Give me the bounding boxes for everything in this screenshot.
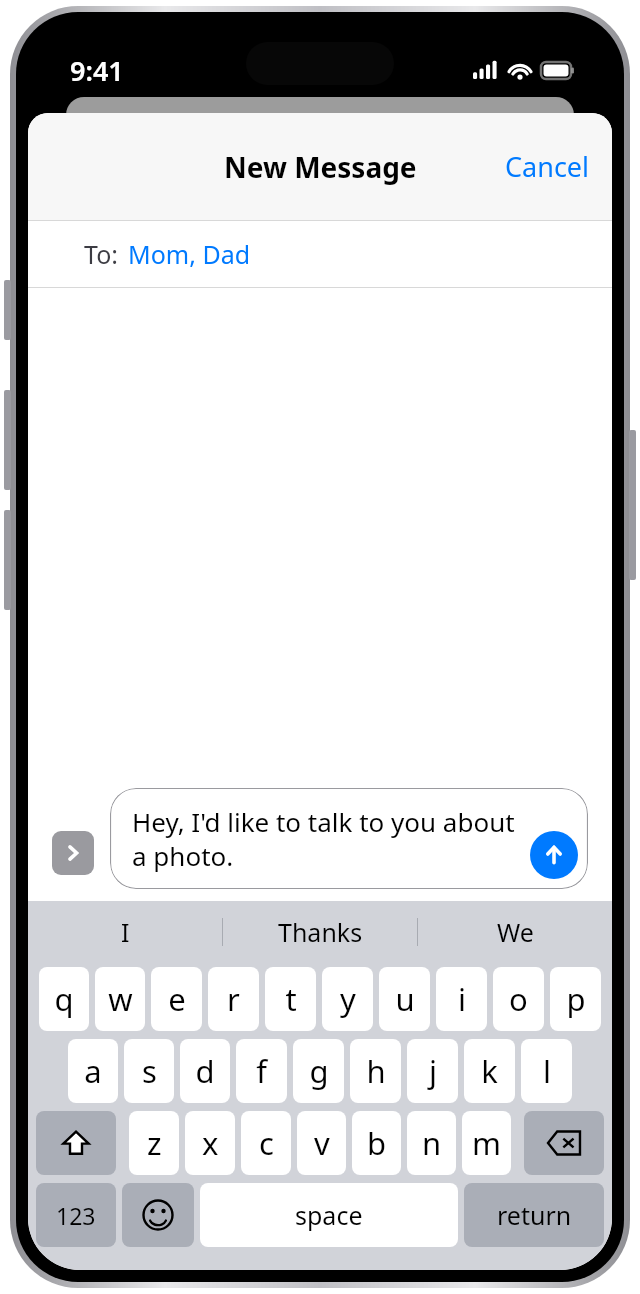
staticText: i [458, 978, 466, 1020]
button[interactable]: j [407, 1039, 458, 1103]
staticText: y [340, 978, 356, 1020]
button[interactable]: m [462, 1111, 511, 1175]
button[interactable]: Shift [36, 1111, 116, 1175]
button[interactable]: r [208, 967, 259, 1031]
button[interactable]: g [293, 1039, 344, 1103]
button[interactable]: o [493, 967, 544, 1031]
staticText: v [314, 1122, 330, 1164]
staticText: New Message [224, 148, 417, 186]
button[interactable]: Hey, I'd like to talk to you about a pho… [110, 788, 588, 889]
button[interactable]: b [352, 1111, 401, 1175]
button[interactable]: I [28, 901, 222, 963]
staticText: Cancel [505, 148, 590, 185]
staticText: I [121, 915, 130, 949]
button[interactable]: 123 [36, 1183, 116, 1247]
button[interactable]: return [464, 1183, 604, 1247]
staticText: f [256, 1050, 267, 1092]
button[interactable]: Send [530, 831, 578, 879]
staticText: Mom, Dad [128, 237, 251, 271]
staticText: n [422, 1122, 442, 1164]
staticText: To: [84, 237, 118, 271]
button[interactable]: h [350, 1039, 401, 1103]
staticText: b [367, 1122, 387, 1164]
staticText: m [472, 1122, 501, 1164]
staticText: We [497, 915, 534, 949]
button[interactable]: e [151, 967, 202, 1031]
button[interactable]: i [436, 967, 487, 1031]
staticText: k [481, 1050, 498, 1092]
staticText: 9:41 [70, 52, 124, 89]
button[interactable]: s [124, 1039, 174, 1103]
button[interactable]: Dictate [522, 1264, 574, 1270]
staticText: Thanks [278, 915, 363, 949]
staticText: w [108, 978, 133, 1020]
staticText: q [54, 978, 74, 1020]
staticText: s [142, 1050, 157, 1092]
staticText: x [202, 1122, 219, 1164]
staticText: e [168, 978, 186, 1020]
button[interactable]: l [521, 1039, 572, 1103]
staticText: t [285, 978, 297, 1020]
button[interactable]: d [180, 1039, 230, 1103]
staticText: d [195, 1050, 215, 1092]
staticText: space [295, 1198, 363, 1232]
button[interactable]: a [68, 1039, 118, 1103]
button[interactable]: space [200, 1183, 458, 1247]
button[interactable]: t [265, 967, 316, 1031]
button[interactable]: Expand apps [52, 831, 94, 875]
button[interactable]: w [95, 967, 145, 1031]
staticText: l [543, 1050, 551, 1092]
staticText: 123 [56, 1200, 96, 1231]
button[interactable]: Backspace [524, 1111, 604, 1175]
staticText: g [309, 1050, 329, 1092]
button[interactable]: n [407, 1111, 456, 1175]
button[interactable]: p [550, 967, 601, 1031]
button[interactable]: k [464, 1039, 515, 1103]
button[interactable]: x [185, 1111, 235, 1175]
button[interactable]: To: [28, 221, 612, 287]
button[interactable]: v [297, 1111, 346, 1175]
button[interactable]: We [418, 901, 612, 963]
staticText: c [259, 1122, 274, 1164]
button[interactable]: u [379, 967, 430, 1031]
staticText: z [147, 1122, 162, 1164]
staticText: r [227, 978, 240, 1020]
button[interactable]: Thanks [223, 901, 417, 963]
staticText: o [509, 978, 528, 1020]
button[interactable]: y [322, 967, 373, 1031]
staticText: return [497, 1198, 572, 1232]
button[interactable]: Cancel [483, 136, 612, 197]
button[interactable]: Change keyboard [62, 1264, 114, 1270]
staticText: Hey, I'd like to talk to you about a pho… [132, 804, 524, 873]
staticText: a [84, 1050, 102, 1092]
button[interactable]: z [129, 1111, 179, 1175]
button[interactable]: f [236, 1039, 287, 1103]
staticText: p [566, 978, 586, 1020]
button[interactable]: q [39, 967, 89, 1031]
staticText: j [429, 1050, 437, 1092]
button[interactable]: c [241, 1111, 291, 1175]
staticText: u [395, 978, 415, 1020]
staticText: h [366, 1050, 386, 1092]
button[interactable]: Emoji [122, 1183, 194, 1247]
